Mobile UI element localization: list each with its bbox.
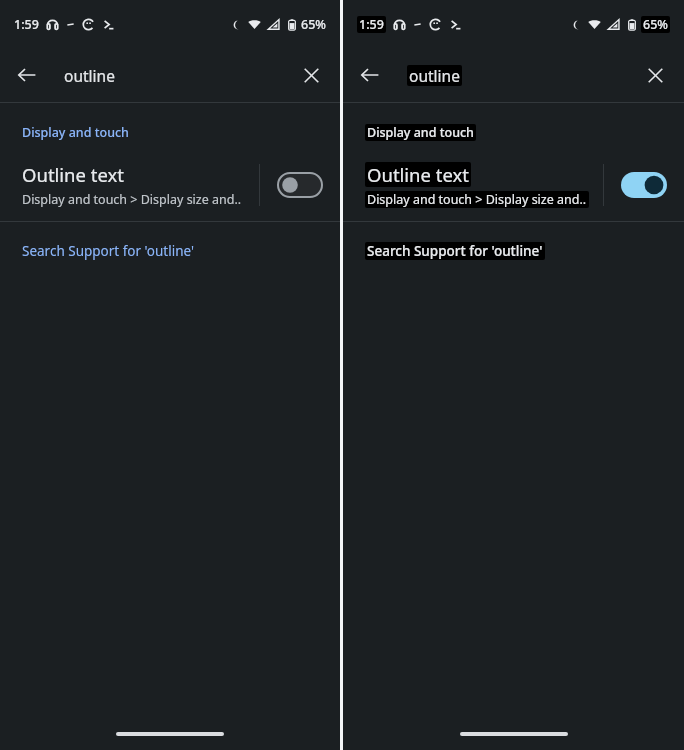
staticText: 1:59 <box>14 16 39 33</box>
staticText: Search Support for 'outline' <box>22 242 195 260</box>
button[interactable]: Search Support for 'outline' <box>0 222 340 280</box>
staticText: Display and touch > Display size and.. <box>367 191 587 208</box>
button[interactable]: Toggle outline text <box>274 163 326 207</box>
button[interactable]: Back <box>349 54 391 96</box>
staticText: Outline text <box>22 162 124 187</box>
button[interactable]: outline <box>64 65 276 86</box>
button[interactable]: outline <box>407 65 620 86</box>
button[interactable]: Search Support for 'outline' <box>343 222 684 280</box>
staticText: Search Support for 'outline' <box>367 242 543 260</box>
button[interactable]: Outline text <box>0 149 340 221</box>
button[interactable]: Toggle outline text <box>618 163 670 207</box>
staticText: 65% <box>643 16 668 33</box>
button[interactable]: Clear search <box>634 54 676 96</box>
staticText: Display and touch > Display size and.. <box>22 191 242 208</box>
staticText: outline <box>409 65 460 86</box>
staticText: Display and touch <box>22 124 129 141</box>
staticText: Display and touch <box>367 124 474 141</box>
button[interactable]: Back <box>6 54 48 96</box>
staticText: 65% <box>301 16 326 33</box>
button[interactable]: Clear search <box>290 54 332 96</box>
staticText: 1:59 <box>359 16 384 33</box>
button[interactable]: Outline text <box>343 149 684 221</box>
staticText: Outline text <box>367 162 469 187</box>
staticText: outline <box>64 65 115 86</box>
